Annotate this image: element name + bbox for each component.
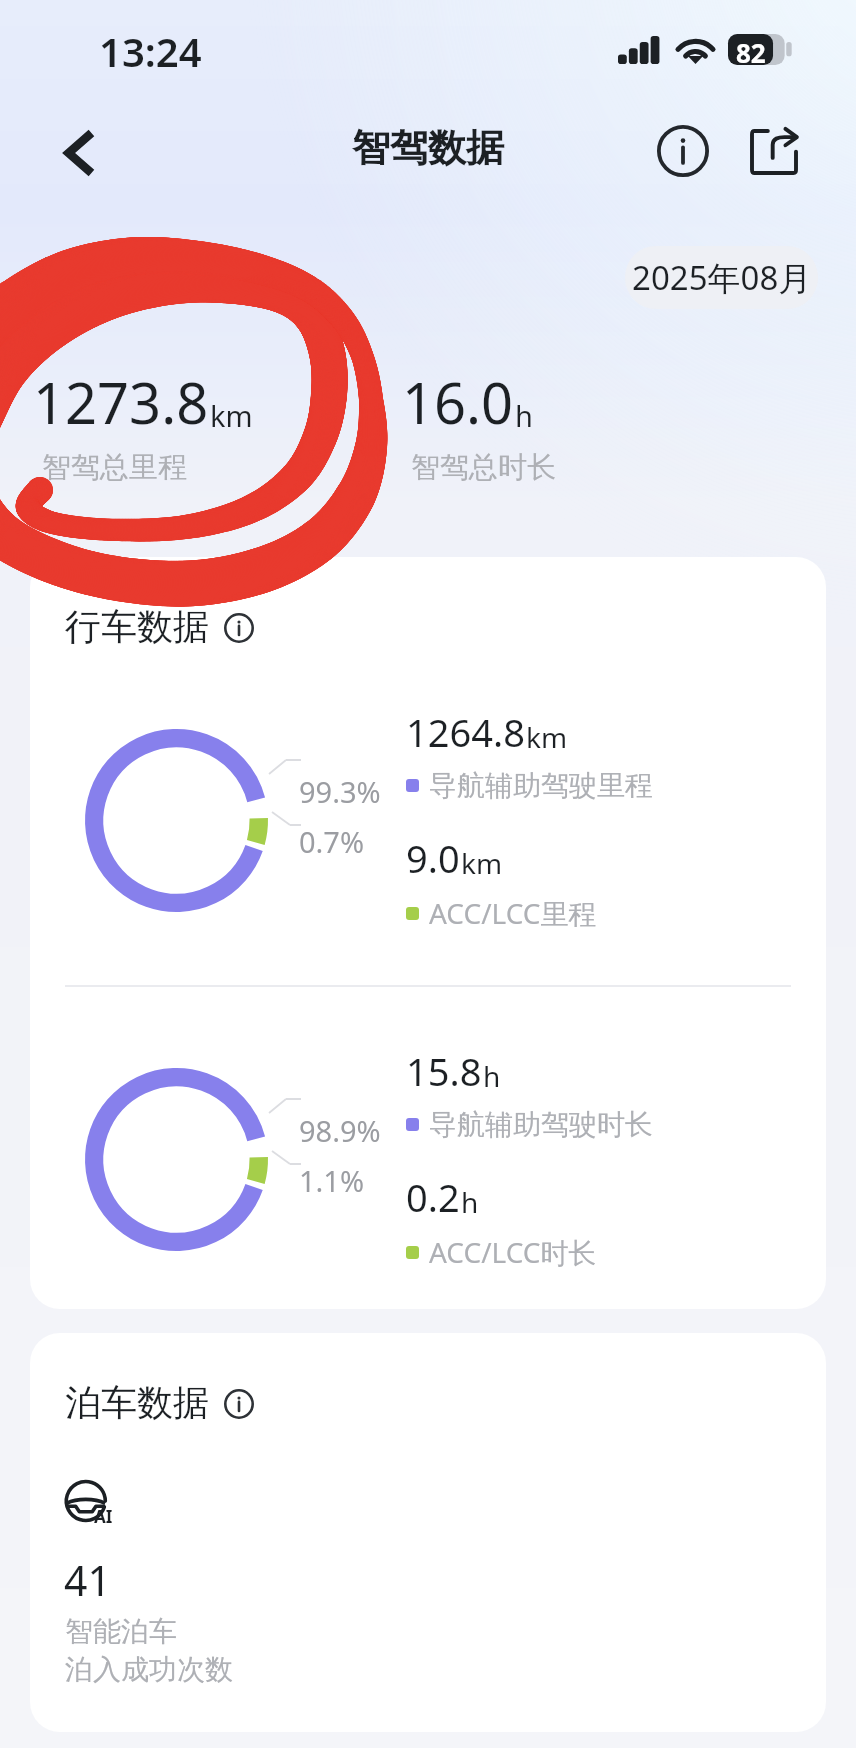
- staticText: 1.1%: [299, 1161, 365, 1200]
- button[interactable]: Back: [44, 117, 116, 189]
- staticText: ACC/LCC时长: [429, 1233, 597, 1271]
- staticText: 泊入成功次数: [65, 1652, 233, 1687]
- staticText: 智驾数据: [352, 124, 504, 172]
- staticText: 0.7%: [299, 822, 365, 861]
- button[interactable]: 泊车数据: [65, 1380, 254, 1425]
- staticText: 16.0: [402, 364, 514, 440]
- staticText: ACC/LCC里程: [429, 894, 597, 932]
- staticText: 智驾总里程: [42, 449, 187, 486]
- staticText: 2025年08月: [632, 255, 812, 300]
- button[interactable]: 2025年08月: [625, 246, 818, 309]
- button[interactable]: Info: [648, 116, 718, 186]
- button[interactable]: 行车数据: [65, 604, 254, 649]
- staticText: 13:24: [99, 24, 202, 78]
- staticText: 15.8: [406, 1045, 482, 1097]
- staticText: 1273.8: [33, 364, 209, 440]
- staticText: km: [461, 844, 503, 882]
- staticText: 82: [736, 35, 766, 66]
- staticText: 智能泊车: [65, 1614, 177, 1649]
- staticText: 9.0: [406, 832, 460, 884]
- staticText: km: [210, 396, 253, 435]
- staticText: 41: [64, 1552, 111, 1608]
- staticText: 98.9%: [299, 1111, 381, 1150]
- staticText: h: [515, 396, 533, 435]
- staticText: 累计智驾: [40, 252, 156, 289]
- staticText: h: [461, 1183, 479, 1221]
- button[interactable]: Share: [734, 112, 814, 192]
- staticText: 行车数据: [65, 604, 209, 649]
- staticText: h: [483, 1057, 501, 1095]
- staticText: 导航辅助驾驶时长: [429, 1107, 653, 1142]
- staticText: km: [526, 718, 568, 756]
- staticText: 0.2: [406, 1171, 460, 1223]
- staticText: 导航辅助驾驶里程: [429, 768, 653, 803]
- staticText: 泊车数据: [65, 1380, 209, 1425]
- staticText: AI: [94, 1505, 113, 1528]
- staticText: 1264.8: [406, 706, 525, 758]
- staticText: 智驾总时长: [411, 449, 556, 486]
- staticText: 99.3%: [299, 772, 381, 811]
